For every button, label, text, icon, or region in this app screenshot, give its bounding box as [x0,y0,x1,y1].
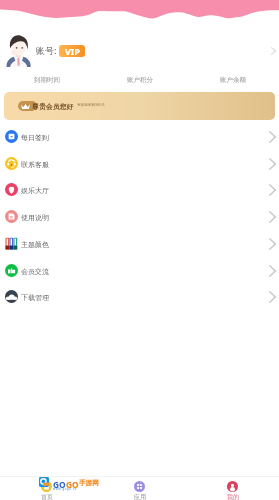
staticText: 尊贵会员您好 [32,102,74,111]
button[interactable]: 下载管理 [0,283,279,310]
staticText: 账户积分 [127,76,153,84]
other: Open [269,158,276,170]
staticText: GO [66,479,79,490]
staticText: 首页 [41,493,53,500]
staticText: w w w . g o g o . c n [53,487,77,491]
staticText: 应用 [134,493,146,500]
staticText: GO [53,479,66,490]
staticText: 手游网 [79,479,99,487]
staticText: 使用说明 [21,213,49,222]
other: Open [269,291,276,303]
staticText: 账号: [36,44,57,56]
staticText: 到期时间 [34,76,60,84]
button[interactable]: 应用 [93,477,186,500]
button[interactable]: 主题颜色 [0,230,279,257]
button[interactable]: 娱乐大厅 [0,176,279,203]
staticText: 娱乐大厅 [21,186,49,195]
staticText: 每日签到 [21,133,49,142]
staticText: 会员交流 [21,267,49,276]
staticText: 主题颜色 [21,240,49,249]
staticText: 下载管理 [21,293,49,302]
button[interactable]: 使用说明 [0,203,279,230]
button[interactable]: 联系客服 [0,150,279,177]
button[interactable]: 每日签到 [0,123,279,150]
other: Open [271,47,276,55]
button[interactable]: 会员交流 [0,257,279,284]
other: Open [269,238,276,250]
button[interactable]: 首页 [0,477,93,500]
staticText: 我的 [227,493,239,500]
staticText: VIP [65,45,80,57]
staticText: 有效期还剩365天 [77,102,105,107]
other: Open [269,265,276,277]
button[interactable]: 尊贵会员您好 [4,92,275,120]
staticText: 联系客服 [21,160,49,169]
other: Open [269,184,276,196]
staticText: 账户余额 [220,76,246,84]
other: Open [269,211,276,223]
button[interactable]: 账号: [0,21,279,67]
other: Open [269,131,276,143]
button[interactable]: 我的 [186,477,279,500]
